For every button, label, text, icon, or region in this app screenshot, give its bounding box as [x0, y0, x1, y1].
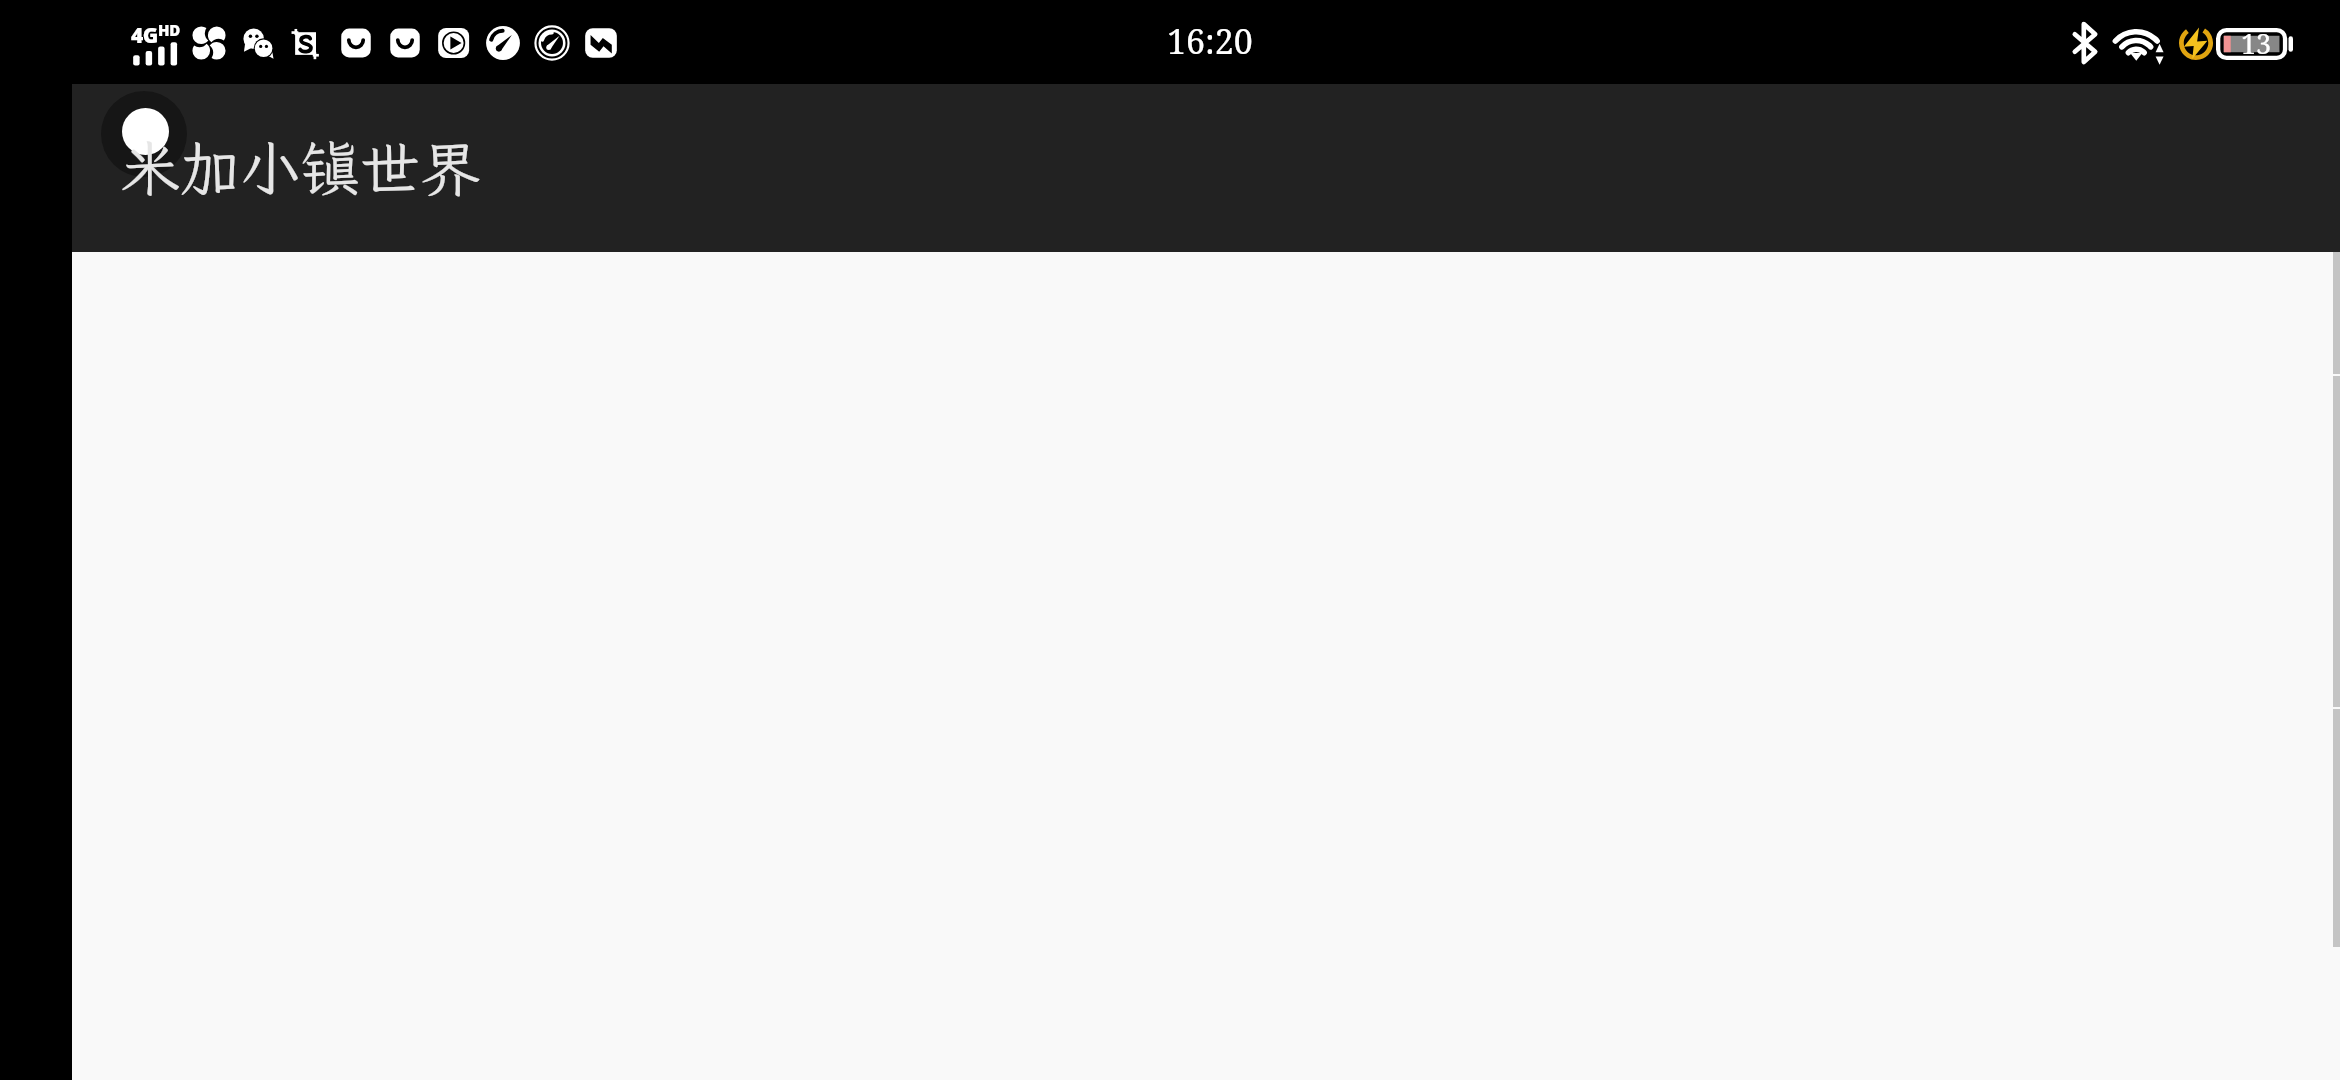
staticText: 13: [2241, 25, 2272, 62]
staticText: 16:20: [1167, 18, 1253, 64]
button[interactable]: App icon: [101, 91, 187, 177]
button[interactable]: App icon: [72, 84, 2340, 252]
staticText: HD: [158, 20, 180, 40]
staticText: 4G: [131, 21, 158, 50]
staticText: 米加小镇世界: [120, 128, 480, 207]
